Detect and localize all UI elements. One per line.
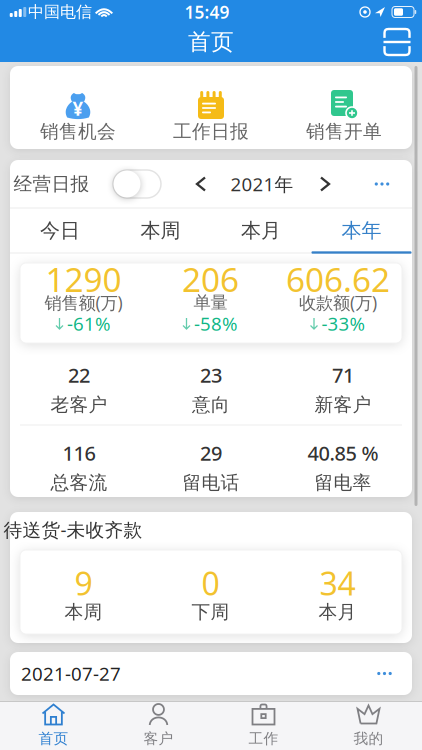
button[interactable]: 工作日报 bbox=[151, 66, 271, 149]
staticText: 单量 bbox=[193, 292, 227, 313]
staticText: 本月 bbox=[241, 218, 281, 243]
staticText: -61% bbox=[67, 311, 111, 336]
staticText: 1290 bbox=[45, 257, 121, 301]
staticText: 销售额(万) bbox=[44, 291, 122, 314]
button[interactable]: 我的 bbox=[316, 701, 421, 750]
staticText: 总客流 bbox=[50, 471, 107, 494]
staticText: 2021年 bbox=[230, 172, 293, 196]
button[interactable]: 经营日报开关 bbox=[113, 170, 161, 198]
staticText: 留电率 bbox=[314, 471, 371, 494]
button[interactable]: 今日 bbox=[10, 208, 110, 252]
button[interactable]: 本月 bbox=[211, 208, 311, 252]
staticText: 本周 bbox=[64, 600, 102, 623]
staticText: 71 bbox=[332, 362, 354, 388]
button[interactable]: 2021-07-27 bbox=[10, 652, 412, 695]
staticText: 我的 bbox=[353, 729, 383, 747]
staticText: 老客户 bbox=[50, 393, 107, 416]
button[interactable]: 上一年 bbox=[186, 169, 216, 199]
staticText: -33% bbox=[321, 311, 365, 336]
button[interactable]: 扫一扫 bbox=[377, 22, 417, 62]
staticText: 意向 bbox=[192, 393, 230, 416]
staticText: 本年 bbox=[341, 218, 381, 243]
staticText: 40.85 % bbox=[307, 440, 378, 466]
button[interactable]: 下一年 bbox=[310, 169, 340, 199]
staticText: 今日 bbox=[40, 218, 80, 243]
staticText: -58% bbox=[194, 311, 238, 336]
button[interactable]: 客户 bbox=[106, 701, 211, 750]
staticText: 新客户 bbox=[314, 393, 371, 416]
staticText: 首页 bbox=[188, 28, 234, 56]
staticText: 销售机会 bbox=[40, 120, 116, 143]
staticText: 29 bbox=[200, 440, 222, 466]
staticText: 下周 bbox=[191, 600, 229, 623]
staticText: 206 bbox=[182, 257, 239, 301]
staticText: 22 bbox=[68, 362, 90, 388]
staticText: 留电话 bbox=[182, 471, 239, 494]
button[interactable]: 更多 bbox=[367, 656, 401, 690]
staticText: ¥ bbox=[72, 96, 83, 121]
button[interactable]: 首页 bbox=[1, 701, 106, 750]
staticText: 经营日报 bbox=[13, 172, 89, 195]
button[interactable]: 本年 bbox=[311, 208, 411, 252]
staticText: 中国电信 bbox=[28, 2, 92, 22]
staticText: 2021-07-27 bbox=[21, 661, 121, 686]
button[interactable]: 更多 bbox=[367, 169, 397, 199]
staticText: 本周 bbox=[140, 218, 180, 243]
staticText: 工作 bbox=[248, 729, 278, 747]
staticText: 34 bbox=[319, 562, 355, 604]
staticText: 9 bbox=[74, 562, 92, 604]
staticText: 待送货-未收齐款 bbox=[3, 517, 142, 542]
staticText: 23 bbox=[200, 362, 222, 388]
button[interactable]: ¥ bbox=[18, 66, 138, 149]
staticText: 收款额(万) bbox=[299, 291, 377, 314]
staticText: 116 bbox=[62, 440, 95, 466]
staticText: 0 bbox=[201, 562, 219, 604]
button[interactable]: 销售开单 bbox=[284, 66, 404, 149]
staticText: 本月 bbox=[318, 600, 356, 623]
staticText: 销售开单 bbox=[306, 120, 382, 143]
staticText: 首页 bbox=[38, 729, 68, 747]
button[interactable]: 本周 bbox=[110, 208, 210, 252]
staticText: 工作日报 bbox=[173, 120, 249, 143]
staticText: 客户 bbox=[143, 729, 173, 747]
button[interactable]: 工作 bbox=[211, 701, 316, 750]
staticText: 15:49 bbox=[184, 0, 229, 23]
staticText: 606.62 bbox=[286, 257, 390, 301]
